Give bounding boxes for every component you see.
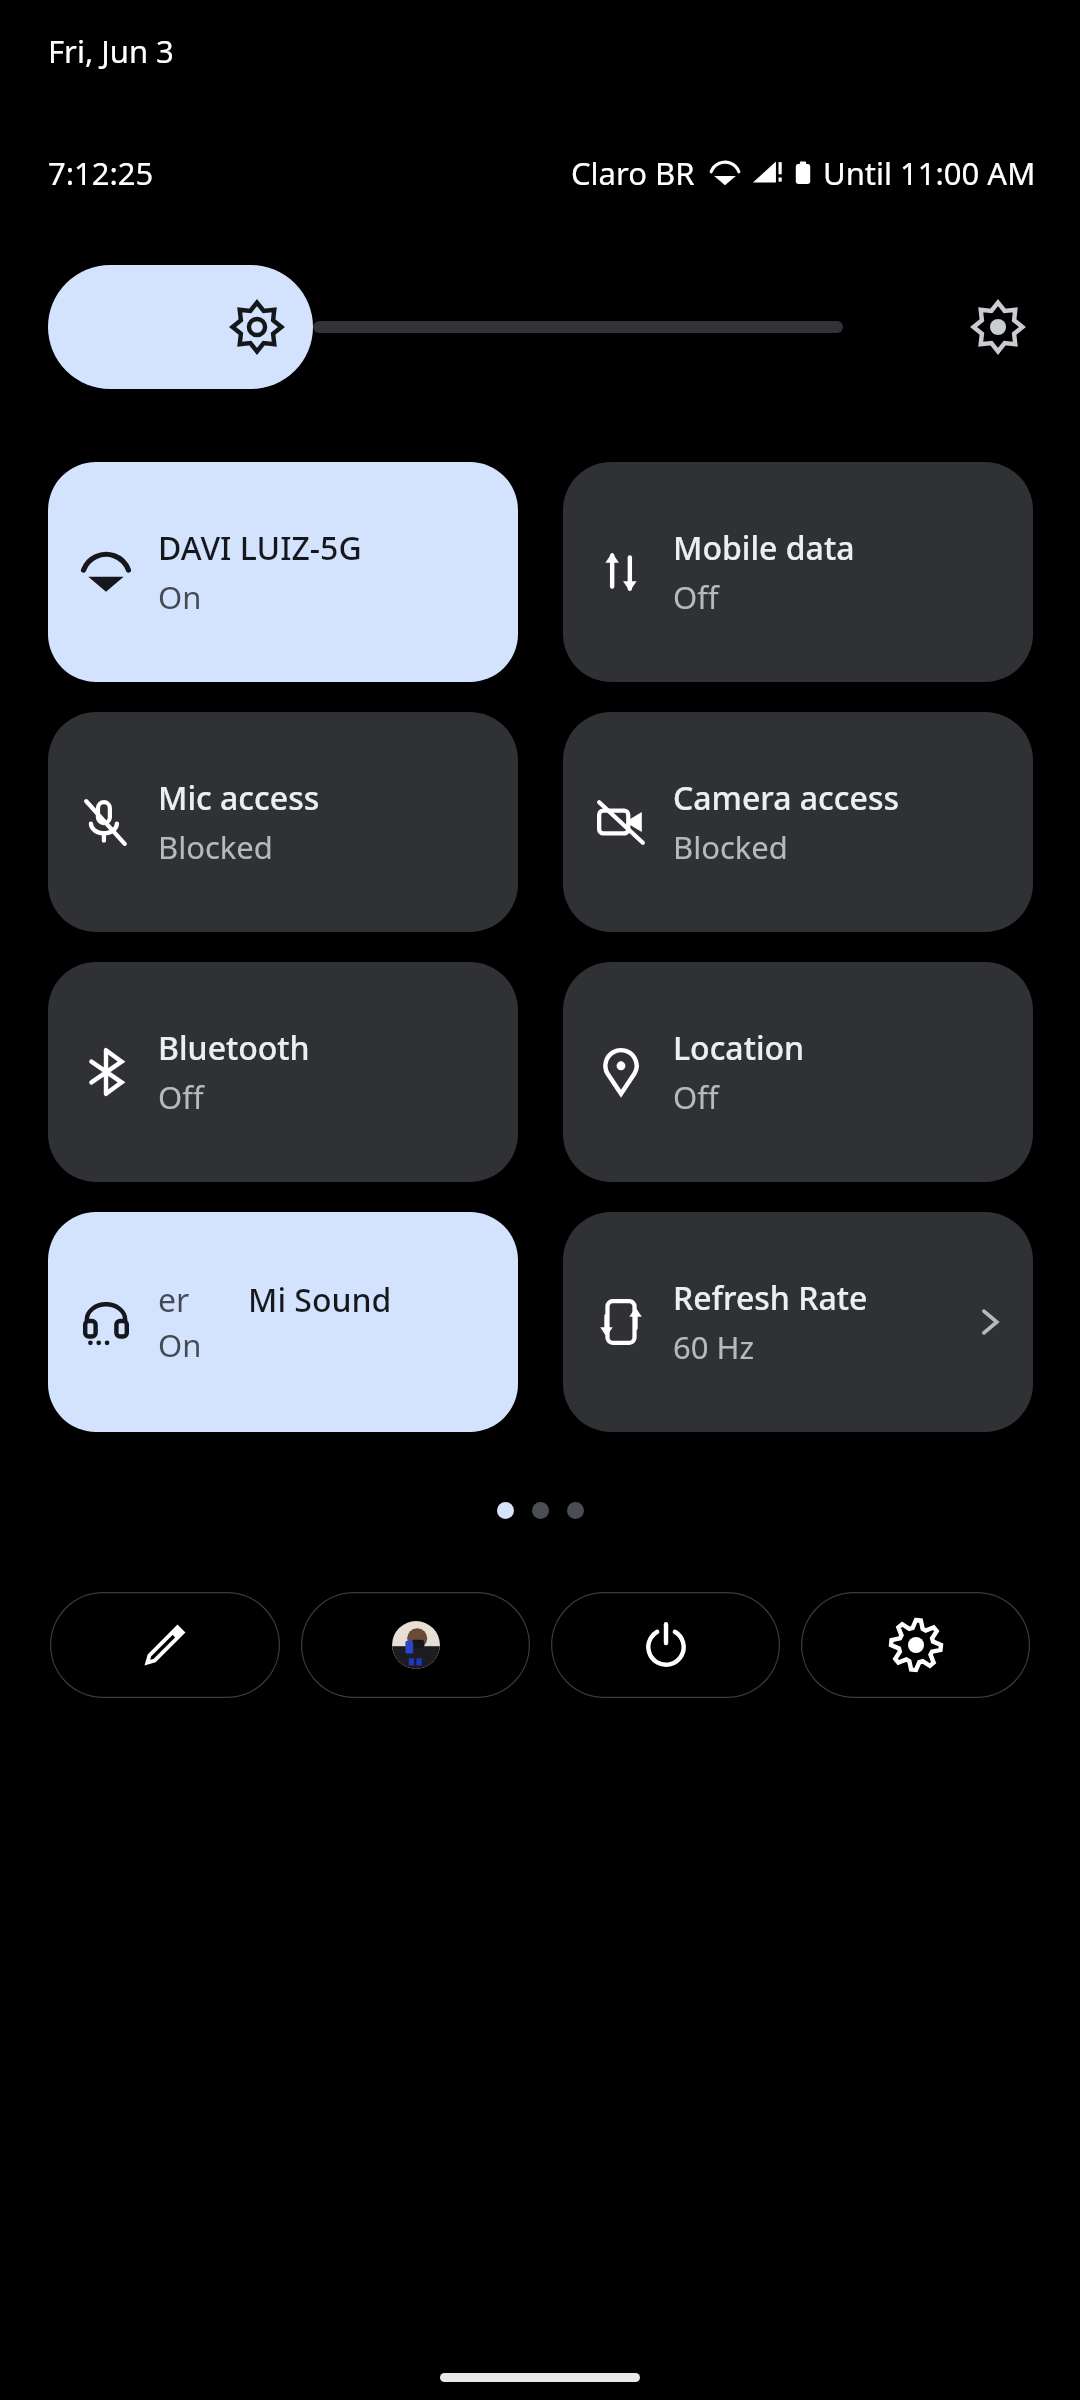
button[interactable]: Location (563, 962, 1033, 1182)
staticText: Blocked (673, 826, 788, 868)
staticText: Mi Sound (248, 1278, 392, 1320)
staticText: Blocked (158, 826, 273, 868)
button[interactable]: DAVI LUIZ-5G (48, 462, 518, 682)
button[interactable]: Refresh Rate (563, 1212, 1033, 1432)
staticText: On (158, 576, 202, 618)
button[interactable]: Mobile data (563, 462, 1033, 682)
staticText: Claro BR (571, 152, 695, 194)
staticText: Fri, Jun 3 (48, 30, 174, 72)
staticText: 60 Hz (673, 1326, 755, 1368)
staticText: Mobile data (673, 526, 855, 570)
staticText: Location (673, 1026, 805, 1070)
button[interactable]: Auto brightness (963, 292, 1033, 362)
button[interactable]: Edit (50, 1592, 280, 1698)
staticText: Camera access (673, 776, 900, 820)
staticText: Bluetooth (158, 1026, 310, 1070)
staticText: Refresh Rate (673, 1276, 868, 1320)
button[interactable]: User profile (301, 1592, 530, 1698)
staticText: Off (158, 1076, 204, 1118)
staticText: er (158, 1278, 190, 1320)
staticText: Off (673, 1076, 719, 1118)
staticText: Mic access (158, 776, 320, 820)
staticText: Until 11:00 AM (823, 152, 1036, 194)
staticText: On (158, 1324, 202, 1366)
button[interactable]: Bluetooth (48, 962, 518, 1182)
button[interactable]: Brightness (48, 265, 313, 389)
button[interactable]: er (48, 1212, 518, 1432)
staticText: DAVI LUIZ-5G (158, 526, 362, 570)
button[interactable]: Camera access (563, 712, 1033, 932)
staticText: 7:12:25 (48, 152, 154, 194)
button[interactable]: Mic access (48, 712, 518, 932)
staticText: Off (673, 576, 719, 618)
button[interactable]: Settings (801, 1592, 1030, 1698)
button[interactable]: Power (551, 1592, 780, 1698)
